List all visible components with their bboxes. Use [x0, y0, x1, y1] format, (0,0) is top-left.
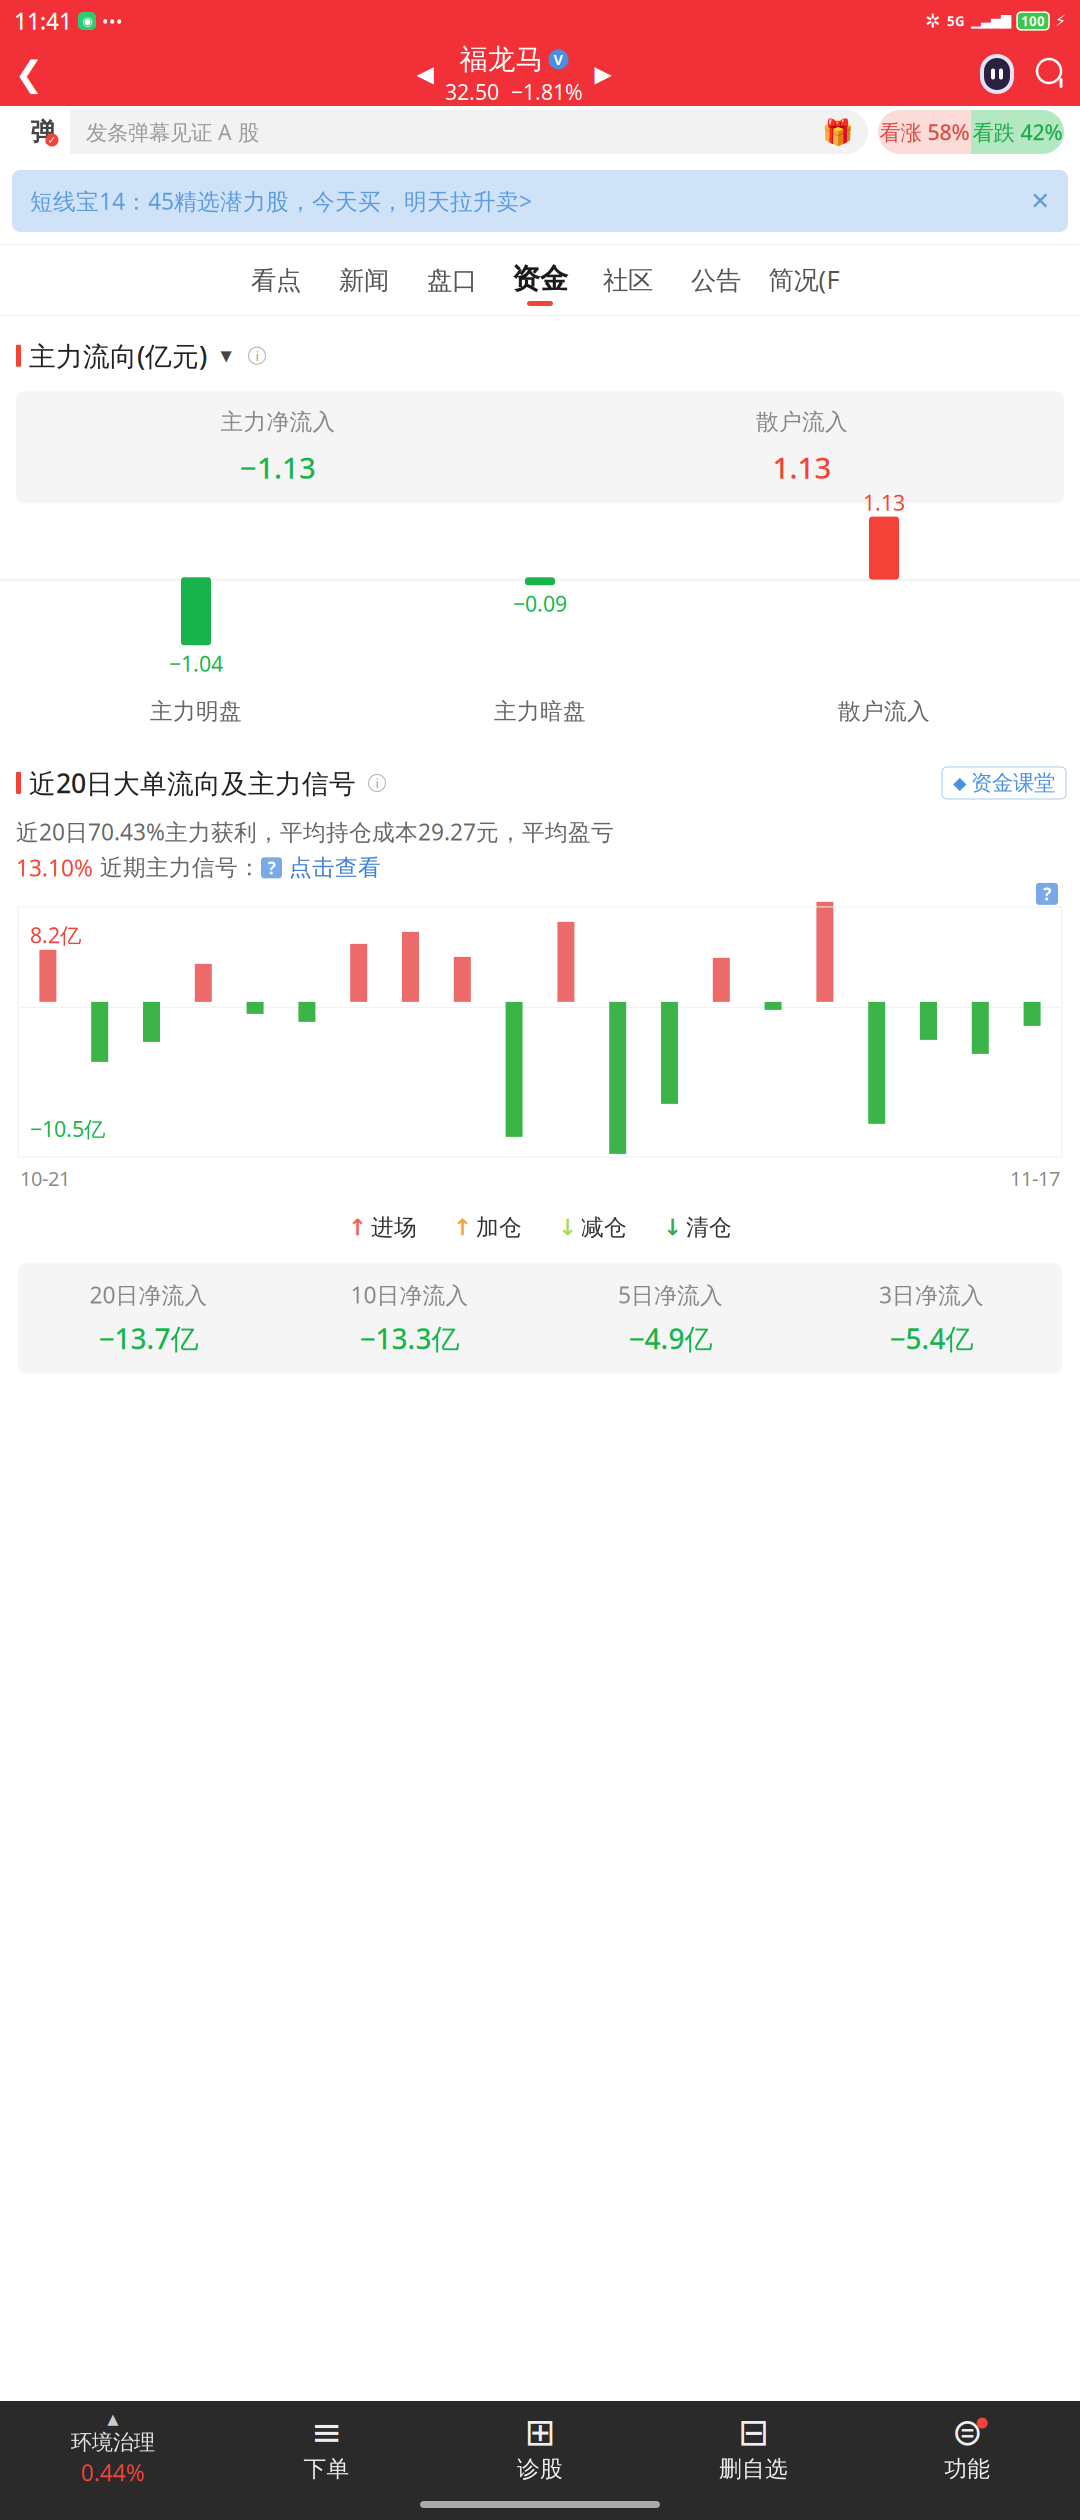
staticText: 资金 [512, 262, 568, 296]
button[interactable]: ⊞ [433, 2415, 647, 2483]
staticText: −5.4亿 [889, 1320, 973, 1357]
staticText: 看涨 58% [879, 118, 969, 146]
staticText: i [255, 347, 258, 365]
button[interactable]: 社区 [584, 245, 672, 315]
staticText: ▲ [107, 2410, 118, 2427]
staticText: 环境治理 [71, 2429, 155, 2455]
button[interactable]: Change metric [215, 345, 237, 367]
staticText: −1.13 [240, 448, 316, 487]
button[interactable]: ? [261, 854, 381, 882]
staticText: 主力明盘 [150, 697, 242, 725]
staticText: ? [267, 856, 275, 879]
button[interactable]: 盘口 [408, 245, 496, 315]
staticText: −13.7亿 [98, 1320, 198, 1357]
staticText: 8.2亿 [30, 921, 81, 949]
staticText: ❮ [14, 54, 43, 94]
staticText: 20日净流入 [89, 1280, 207, 1310]
staticText: ▶ [594, 61, 611, 87]
staticText: V [553, 50, 563, 69]
staticText: ⚡︎ [1055, 12, 1066, 30]
button[interactable]: Search [1024, 42, 1080, 106]
button[interactable]: 简况(F [760, 245, 848, 315]
button[interactable]: Previous stock [405, 42, 445, 106]
button[interactable]: 看涨 58% [878, 110, 971, 154]
staticText: 删自选 [719, 2455, 788, 2483]
staticText: 3日净流入 [879, 1280, 984, 1310]
staticText: ⊟ [738, 2411, 769, 2453]
staticText: 散户流入 [838, 697, 930, 725]
staticText: 13.10% [16, 853, 93, 883]
staticText: 看跌 42% [972, 118, 1062, 146]
button[interactable]: 看跌 42% [971, 110, 1064, 154]
staticText: ↑ [348, 1214, 367, 1240]
staticText: 进场 [371, 1213, 417, 1241]
staticText: 10日净流入 [350, 1280, 468, 1310]
staticText: 下单 [303, 2455, 349, 2483]
button[interactable]: ≡ [220, 2415, 433, 2483]
button[interactable]: AI assistant [970, 42, 1024, 106]
button[interactable]: 新闻 [320, 245, 408, 315]
button[interactable]: 公告 [672, 245, 760, 315]
staticText: ✓ [47, 134, 56, 146]
staticText: 简况(F [768, 262, 839, 296]
staticText: 11:41 [14, 6, 72, 36]
staticText: ◉ [82, 14, 92, 28]
staticText: 加仓 [476, 1213, 522, 1241]
staticText: ↑ [453, 1214, 472, 1240]
staticText: 盘口 [427, 265, 477, 296]
staticText: 近期主力信号： [93, 854, 261, 882]
staticText: 11-17 [1010, 1165, 1060, 1191]
button[interactable]: Chart help [1036, 883, 1058, 905]
staticText: −4.9亿 [628, 1320, 712, 1357]
staticText: 1.13 [772, 448, 831, 487]
staticText: 5G [947, 12, 965, 30]
button[interactable]: Info [364, 770, 390, 796]
staticText: ⊞ [524, 2411, 555, 2453]
staticText: 发条弹幕见证 A 股 [86, 118, 259, 146]
staticText: 福龙马 [459, 42, 543, 76]
staticText: ✲ [925, 10, 941, 32]
staticText: −1.04 [169, 649, 223, 677]
staticText: 0.44% [81, 2457, 145, 2487]
button[interactable]: 资金 [496, 245, 584, 315]
staticText: 点击查看 [289, 854, 381, 882]
staticText: 诊股 [517, 2455, 563, 2483]
staticText: −0.09 [513, 589, 567, 617]
staticText: 功能 [944, 2455, 990, 2483]
staticText: ◆ [953, 773, 966, 793]
staticText: 主力流向(亿元) [29, 338, 207, 373]
button[interactable]: Next stock [583, 42, 623, 106]
staticText: ✕ [1030, 187, 1050, 215]
staticText: −13.3亿 [359, 1320, 459, 1357]
staticText: 1.13 [863, 488, 905, 516]
staticText: 100 [1021, 12, 1045, 30]
staticText: ? [1043, 882, 1051, 905]
staticText: ↓ [558, 1214, 577, 1240]
staticText: 公告 [691, 265, 741, 296]
staticText: ••• [102, 9, 123, 32]
staticText: 近20日70.43%主力获利，平均持仓成本29.27元，平均盈亏 [16, 817, 614, 847]
staticText: 短线宝14：45精选潜力股，今天买，明天拉升卖> [30, 186, 532, 216]
button[interactable]: 看点 [232, 245, 320, 315]
button[interactable]: ⊟ [647, 2415, 860, 2483]
staticText: 清仓 [686, 1213, 732, 1241]
staticText: 减仓 [581, 1213, 627, 1241]
staticText: 近20日大单流向及主力信号 [29, 765, 356, 801]
button[interactable]: 短线宝14：45精选潜力股，今天买，明天拉升卖> [0, 158, 1080, 244]
button[interactable]: Info [245, 344, 269, 368]
staticText: 散户流入 [756, 408, 848, 436]
button[interactable]: 弹 [0, 110, 868, 154]
staticText: ⊜ [952, 2411, 983, 2453]
button[interactable]: ◆ [942, 767, 1066, 799]
staticText: ≡ [311, 2411, 342, 2453]
button[interactable]: Back [0, 42, 58, 106]
staticText: 32.50 −1.81% [445, 77, 583, 106]
staticText: 🎁 [822, 117, 854, 146]
staticText: 看点 [251, 265, 301, 296]
button[interactable]: ⊜ [860, 2415, 1074, 2483]
button[interactable]: ▲ [6, 2410, 220, 2487]
staticText: ↓ [663, 1214, 682, 1240]
staticText: 资金课堂 [971, 770, 1055, 796]
staticText: −10.5亿 [30, 1114, 105, 1143]
staticText: 弹 [30, 116, 55, 147]
